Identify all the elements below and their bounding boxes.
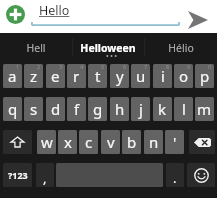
button[interactable]: ' xyxy=(165,130,184,154)
button[interactable]: Shift xyxy=(3,130,32,154)
button[interactable]: w xyxy=(37,130,56,154)
staticText: q xyxy=(8,99,18,119)
staticText: , xyxy=(43,169,47,187)
button[interactable]: s xyxy=(24,97,43,121)
button[interactable]: g xyxy=(88,97,107,121)
button[interactable]: h xyxy=(110,97,129,121)
staticText: Helloween xyxy=(80,41,136,55)
button[interactable]: , xyxy=(36,163,54,187)
button[interactable]: y xyxy=(110,64,129,88)
staticText: 0 xyxy=(208,64,212,70)
button[interactable]: f xyxy=(67,97,86,121)
button[interactable]: d xyxy=(46,97,65,121)
staticText: r xyxy=(73,66,80,86)
button[interactable]: z xyxy=(24,64,43,88)
button[interactable]: Emoji xyxy=(187,163,215,187)
button[interactable]: Hélio xyxy=(145,33,217,62)
staticText: 3 xyxy=(59,64,63,70)
button[interactable]: v xyxy=(101,130,120,154)
button[interactable]: a xyxy=(3,64,22,88)
staticText: ' xyxy=(173,132,177,152)
staticText: 6 xyxy=(123,64,127,70)
staticText: f xyxy=(74,99,80,119)
staticText: n xyxy=(149,132,159,152)
staticText: k xyxy=(158,99,167,119)
button[interactable]: t xyxy=(88,64,107,88)
button[interactable]: i xyxy=(153,64,172,88)
staticText: d xyxy=(51,99,61,119)
staticText: u xyxy=(136,66,146,86)
button[interactable]: x xyxy=(58,130,77,154)
button[interactable]: m xyxy=(195,97,214,121)
staticText: 8 xyxy=(166,64,170,70)
staticText: 4 xyxy=(80,64,84,70)
button[interactable]: Helloween xyxy=(72,33,144,62)
staticText: g xyxy=(93,99,103,119)
staticText: . xyxy=(173,169,177,187)
staticText: e xyxy=(51,66,60,86)
staticText: 2 xyxy=(37,64,41,70)
staticText: p xyxy=(200,66,210,86)
button[interactable]: b xyxy=(122,130,141,154)
staticText: Hello xyxy=(39,2,70,19)
button[interactable]: l xyxy=(174,97,193,121)
staticText: o xyxy=(179,66,189,86)
staticText: l xyxy=(182,99,186,119)
button[interactable]: ?123 xyxy=(3,163,32,187)
staticText: z xyxy=(30,66,38,86)
button[interactable]: c xyxy=(79,130,98,154)
button[interactable]: Add attachment xyxy=(6,5,25,24)
button[interactable]: p xyxy=(195,64,214,88)
button[interactable]: Backspace xyxy=(189,130,215,154)
staticText: s xyxy=(30,99,38,119)
staticText: 1 xyxy=(16,64,20,70)
button[interactable]: n xyxy=(144,130,163,154)
button[interactable]: u xyxy=(131,64,150,88)
button[interactable]: q xyxy=(3,97,22,121)
staticText: y xyxy=(116,66,124,86)
button[interactable]: e xyxy=(46,64,65,88)
button[interactable]: k xyxy=(153,97,172,121)
staticText: b xyxy=(127,132,137,152)
staticText: 9 xyxy=(187,64,191,70)
button[interactable]: Send xyxy=(188,11,208,29)
staticText: a xyxy=(8,66,17,86)
staticText: x xyxy=(64,132,72,152)
staticText: 7 xyxy=(144,64,148,70)
button[interactable]: . xyxy=(166,163,184,187)
staticText: Hell xyxy=(26,41,46,55)
staticText: i xyxy=(161,66,165,86)
staticText: m xyxy=(197,99,212,119)
button[interactable]: j xyxy=(131,97,150,121)
button[interactable]: Hell xyxy=(0,33,72,62)
staticText: w xyxy=(41,132,53,152)
staticText: ?123 xyxy=(8,169,28,181)
staticText: 5 xyxy=(101,64,105,70)
button[interactable]: r xyxy=(67,64,86,88)
staticText: j xyxy=(139,99,143,119)
staticText: c xyxy=(85,132,93,152)
button[interactable]: o xyxy=(174,64,193,88)
staticText: v xyxy=(107,132,115,152)
staticText: t xyxy=(95,66,101,86)
staticText: h xyxy=(115,99,125,119)
staticText: Hélio xyxy=(168,41,194,55)
